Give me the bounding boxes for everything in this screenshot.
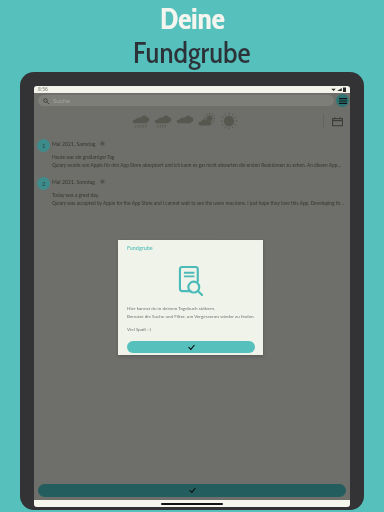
staticText: Benutze die Suche und Filter, um Vergess… [127,313,255,319]
staticText: 1 [42,142,46,149]
staticText: Quiary wurde von Apple für den App Store… [52,162,342,168]
button[interactable]: 1 [34,137,350,173]
button[interactable]: Menu [336,94,349,107]
button[interactable]: Partly sunny [198,112,216,130]
staticText: 2 [42,180,46,187]
staticText: Suche [53,97,70,105]
staticText: Mai 2021, Sonntag [52,179,96,185]
button[interactable]: 2 [34,175,350,211]
button[interactable]: Rain [154,112,172,130]
button[interactable]: Sunny [220,112,238,130]
staticText: Today was a great day. [52,192,99,198]
button[interactable]: Confirm [38,484,346,497]
staticText: Viel Spaß :-) [127,326,152,332]
staticText: Hier kannst du in deinem Tagebuch stöber… [127,305,216,311]
staticText: Fundgrube [127,245,153,251]
button[interactable]: Calendar [330,114,345,129]
staticText: Quiary was accepted by Apple for the App… [52,200,344,206]
button[interactable]: Suche [38,95,334,106]
staticText: Deine [160,1,225,37]
button[interactable]: Cloudy [176,112,194,130]
staticText: Fundgrube [133,35,251,71]
staticText: 8:56 [38,86,48,93]
button[interactable]: OK [127,341,255,353]
button[interactable]: Heavy rain [132,112,150,130]
staticText: Heute war ein großartiger Tag [52,154,115,160]
staticText: Mai 2021, Samstag [52,141,96,147]
